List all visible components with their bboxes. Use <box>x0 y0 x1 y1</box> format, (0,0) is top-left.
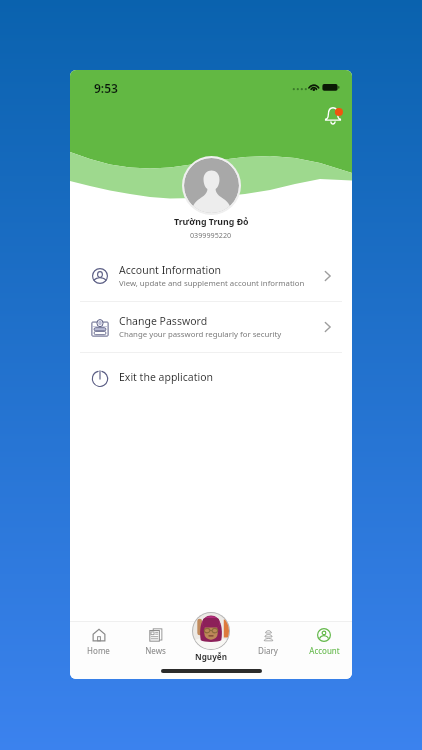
staticText: News <box>145 645 166 656</box>
staticText: View, update and supplement account info… <box>119 278 305 289</box>
button[interactable]: Nguyễn <box>192 612 230 662</box>
staticText: Change your password regularly for secur… <box>119 329 282 340</box>
button[interactable]: Account Information <box>70 250 352 301</box>
staticText: Diary <box>258 645 278 656</box>
button[interactable]: Notifications <box>317 99 349 131</box>
staticText: 9:53 <box>94 80 118 96</box>
button[interactable]: Account <box>296 622 352 662</box>
staticText: Account Information <box>119 263 222 277</box>
button[interactable]: Exit the application <box>70 353 352 401</box>
staticText: Change Password <box>119 314 208 328</box>
button[interactable]: Profile photo <box>184 158 239 213</box>
button[interactable]: Change Password <box>70 302 352 352</box>
staticText: Account <box>309 645 340 656</box>
button[interactable]: Home <box>70 622 127 662</box>
staticText: 0399995220 <box>190 230 232 240</box>
staticText: Home <box>87 645 110 656</box>
staticText: Trường Trung Đỏ <box>174 216 249 228</box>
button[interactable]: News <box>127 622 184 662</box>
button[interactable]: Diary <box>240 622 296 662</box>
staticText: Nguyễn <box>195 651 228 662</box>
staticText: Exit the application <box>119 370 214 384</box>
